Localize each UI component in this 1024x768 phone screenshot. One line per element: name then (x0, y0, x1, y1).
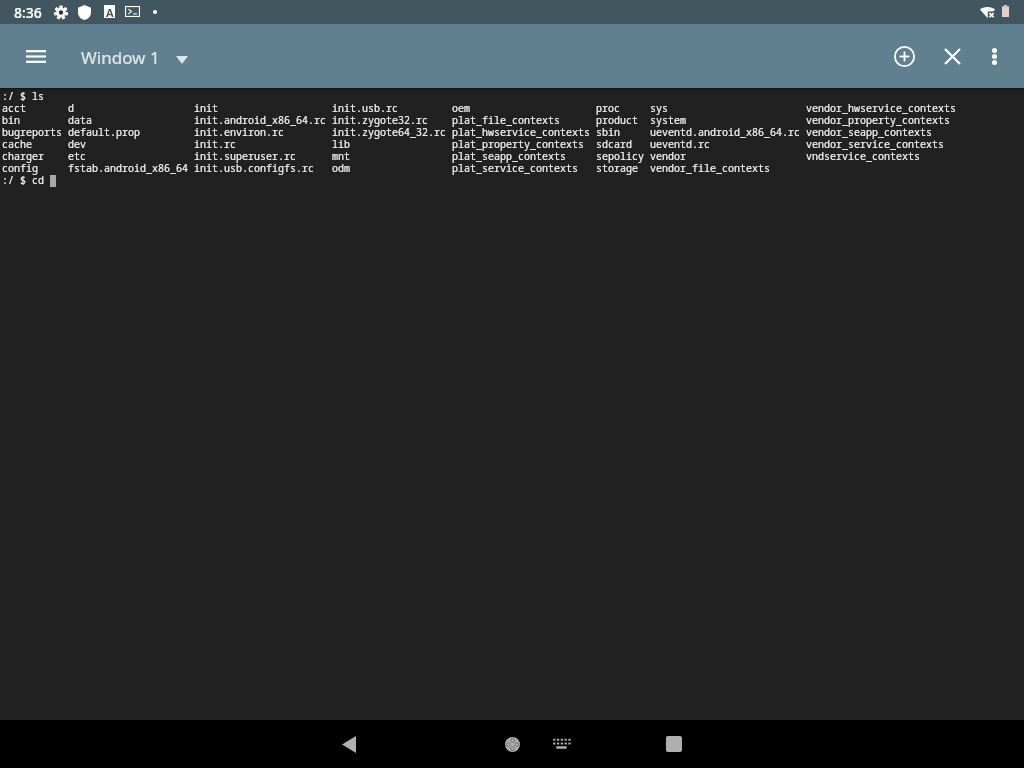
staticText: acct d init init.usb.rc oem proc sys ven… (2, 101, 956, 115)
button[interactable]: Menu (16, 36, 56, 76)
staticText: 8:36 (14, 3, 42, 22)
button[interactable]: Keyboard (537, 720, 585, 768)
staticText: config fstab.android_x86_64 init.usb.con… (2, 161, 770, 175)
button[interactable]: More options (972, 34, 1016, 78)
button[interactable]: Home (488, 720, 536, 768)
staticText: bugreports default.prop init.environ.rc … (2, 125, 932, 139)
button[interactable]: Recents (650, 720, 698, 768)
button[interactable]: New window (882, 34, 926, 78)
staticText: Window 1 (81, 46, 160, 69)
button[interactable]: Close (930, 34, 974, 78)
button[interactable]: Back (325, 720, 373, 768)
staticText: bin data init.android_x86_64.rc init.zyg… (2, 113, 950, 127)
staticText: cache dev init.rc lib plat_property_cont… (2, 137, 944, 151)
staticText: A (106, 5, 114, 18)
staticText: :/ $ ls (2, 89, 44, 103)
staticText: charger etc init.superuser.rc mnt plat_s… (2, 149, 920, 163)
staticText: :/ $ cd (2, 173, 50, 187)
button[interactable]: Window 1 (77, 40, 192, 75)
